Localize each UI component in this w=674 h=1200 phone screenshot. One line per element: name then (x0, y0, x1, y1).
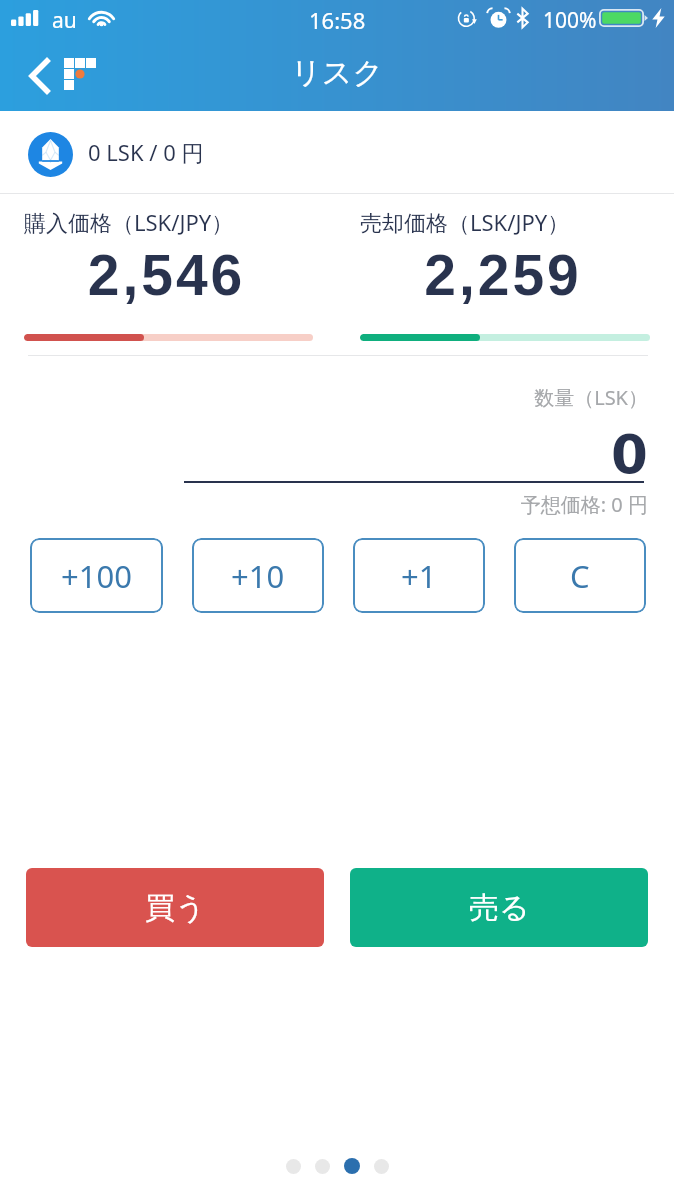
button[interactable]: Page (315, 1159, 330, 1174)
staticText: 購入価格（LSK/JPY） (24, 207, 234, 237)
staticText: 売る (469, 889, 530, 927)
staticText: 予想価格: 0 円 (26, 491, 648, 518)
staticText: +10 (231, 555, 285, 597)
button[interactable]: Home (64, 58, 96, 91)
button[interactable]: C (514, 538, 646, 613)
button[interactable]: +100 (30, 538, 163, 613)
staticText: +1 (401, 555, 437, 597)
staticText: 100% (543, 6, 597, 35)
staticText: 売却価格（LSK/JPY） (360, 207, 570, 237)
staticText: 数量（LSK） (26, 384, 648, 411)
staticText: 0 LSK / 0 円 (88, 137, 204, 167)
button[interactable]: +10 (192, 538, 324, 613)
button[interactable]: 売る (350, 868, 648, 947)
button[interactable]: Page 3 (344, 1158, 360, 1174)
button[interactable]: +1 (353, 538, 485, 613)
staticText: +100 (61, 555, 132, 597)
staticText: 0 (26, 424, 648, 486)
button[interactable]: 買う (26, 868, 324, 947)
staticText: リスク (291, 54, 384, 92)
staticText: 2,546 (22, 243, 311, 307)
staticText: 買う (145, 889, 206, 927)
staticText: 16:58 (309, 5, 366, 35)
staticText: 2,259 (358, 243, 648, 307)
button[interactable]: Back (18, 54, 60, 98)
staticText: au (52, 6, 77, 35)
button[interactable]: 0 LSK / 0 円 (0, 111, 674, 193)
button[interactable]: Page (286, 1159, 301, 1174)
staticText: C (570, 555, 590, 597)
button[interactable]: Page (374, 1159, 389, 1174)
